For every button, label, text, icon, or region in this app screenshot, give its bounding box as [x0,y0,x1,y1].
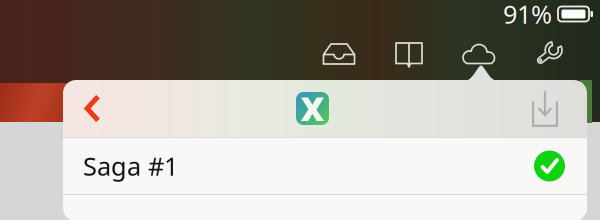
button[interactable]: Settings [514,34,584,74]
button[interactable]: Back [63,80,122,137]
button[interactable]: Saga #1 [63,138,587,194]
staticText: X [300,86,324,131]
button[interactable]: Cloud [444,34,514,74]
button[interactable]: Download [503,80,587,137]
button[interactable]: Reading [374,34,444,74]
staticText: Saga #1 [83,149,178,183]
button[interactable]: Library [304,34,374,74]
staticText: 91% [503,0,552,31]
